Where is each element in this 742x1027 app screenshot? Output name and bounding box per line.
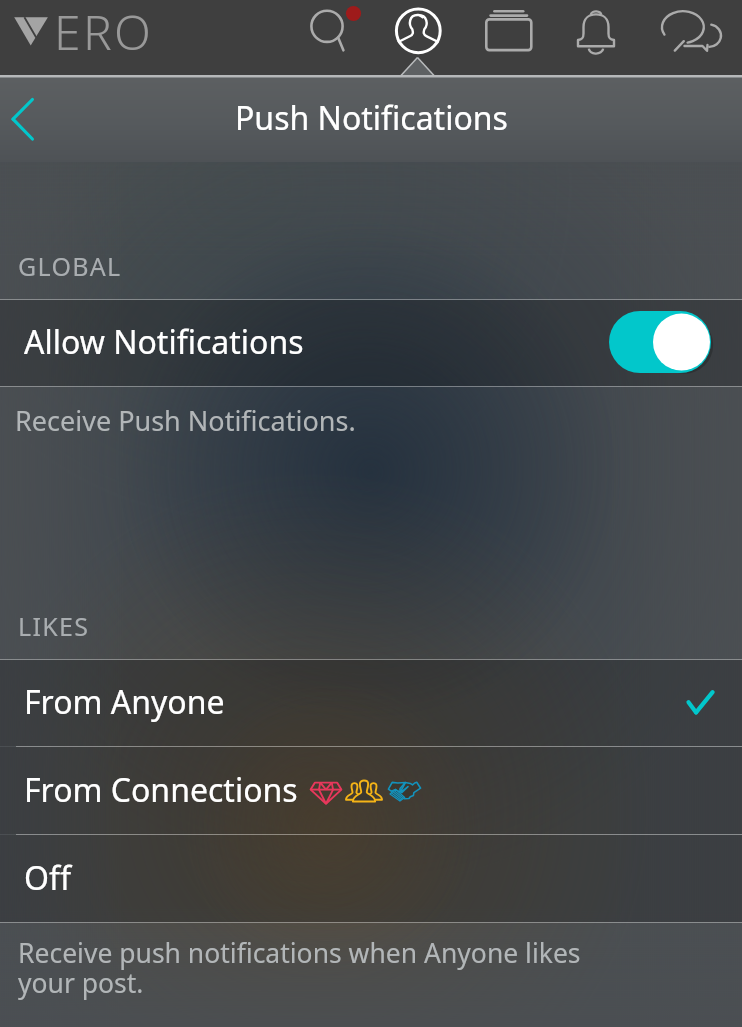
staticText: Receive Push Notifications. — [15, 402, 356, 439]
button[interactable]: Collections — [478, 5, 540, 71]
button[interactable]: Search — [296, 5, 362, 71]
staticText: Push Notifications — [235, 96, 508, 140]
button[interactable]: Profile — [385, 5, 452, 71]
staticText: Off — [24, 856, 72, 900]
button[interactable]: From Anyone — [0, 660, 742, 746]
button[interactable]: Allow Notifications — [0, 300, 742, 386]
button[interactable]: Messages — [650, 5, 726, 71]
button[interactable]: VERO home — [14, 10, 154, 65]
staticText: From Connections — [24, 768, 298, 812]
staticText: LIKES — [18, 609, 90, 643]
button[interactable]: Off — [0, 835, 742, 922]
button[interactable]: Allow notifications toggle — [609, 311, 713, 375]
button[interactable]: Notifications — [560, 5, 632, 71]
staticText: Receive push notifications when Anyone l… — [18, 935, 581, 1001]
staticText: From Anyone — [24, 680, 225, 724]
staticText: Allow Notifications — [24, 320, 304, 364]
button[interactable]: Back — [0, 75, 70, 162]
button[interactable]: From Connections — [0, 747, 742, 834]
staticText: GLOBAL — [18, 249, 122, 283]
staticText: ERO — [54, 0, 154, 64]
